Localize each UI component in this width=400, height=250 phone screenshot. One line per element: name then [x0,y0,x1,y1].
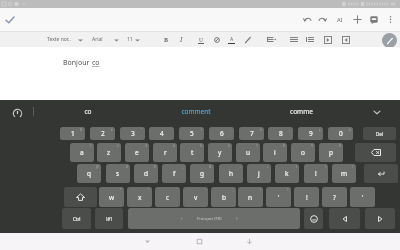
button[interactable]: Emoji [304,208,323,229]
button[interactable]: 1 [60,127,85,140]
button[interactable]: o [291,143,315,162]
staticText: b [222,193,226,202]
staticText: é [111,128,113,132]
staticText: ! [306,193,308,202]
button[interactable]: n [238,187,263,207]
button[interactable]: Redo [314,8,330,31]
staticText: Français (FR) [197,216,222,222]
staticText: o [301,148,305,157]
button[interactable]: 2 [90,127,115,140]
button[interactable]: j [247,164,271,183]
button[interactable]: a [70,143,94,162]
button[interactable]: 6 [209,127,234,140]
button[interactable]: Text color [223,31,239,48]
button[interactable]: Insert [349,8,365,31]
button[interactable]: t [180,143,204,162]
button[interactable]: c [155,187,180,207]
button[interactable]: l [304,164,328,183]
button[interactable]: comme [261,101,341,122]
button[interactable]: p [319,143,343,162]
button[interactable]: 7 [239,127,264,140]
button[interactable]: Highlight color [209,31,225,48]
button[interactable]: 5 [179,127,204,140]
staticText: 8 [279,129,283,138]
button[interactable]: ' [266,187,291,207]
button[interactable]: i [263,143,287,162]
button[interactable]: Line spacing [263,31,279,48]
staticText: - [240,165,241,169]
button[interactable]: Home [190,233,208,250]
button[interactable]: q [77,164,101,183]
button[interactable]: ! [294,187,319,207]
button[interactable]: Done [1,8,19,31]
button[interactable]: 9 [298,127,323,140]
button[interactable]: r [153,143,177,162]
staticText: : [205,188,206,192]
button[interactable]: 11 [124,31,141,48]
staticText: 7 [250,129,254,138]
button[interactable]: z [97,143,121,162]
button[interactable]: Enter [364,164,398,183]
button[interactable]: u [236,143,260,162]
staticText: 9 [311,144,313,148]
button[interactable]: Voice input [12,108,23,119]
staticText: & [80,128,83,132]
button[interactable]: Hide keyboard [138,233,156,250]
button[interactable]: y [208,143,232,162]
button[interactable]: Space [128,208,300,229]
button[interactable]: ? [322,187,347,207]
button[interactable]: More options [382,8,398,31]
button[interactable]: v [183,187,208,207]
staticText: ‹ [181,215,183,222]
button[interactable]: Del [363,127,396,140]
button[interactable]: 0 [328,127,353,140]
button[interactable]: 4 [149,127,174,140]
button[interactable]: Comment [366,8,382,31]
button[interactable]: Texte nor.. [44,31,84,48]
button[interactable]: Decrease indent [338,31,354,48]
button[interactable]: g [190,164,214,183]
button[interactable]: Bold [158,31,174,48]
button[interactable]: Move cursor left [329,208,360,229]
button[interactable]: x [127,187,152,207]
button[interactable]: 3 [120,127,145,140]
button[interactable]: d [134,164,158,183]
button[interactable]: Shift [64,187,97,207]
button[interactable]: m [332,164,356,183]
staticText: 7 [256,144,258,148]
button[interactable]: s [106,164,130,183]
button[interactable]: Edit mode [382,33,397,48]
button[interactable]: Align left [302,31,318,48]
button[interactable]: Undo [299,8,315,31]
button[interactable]: e [125,143,149,162]
button[interactable]: Spelling [332,8,348,31]
button[interactable]: k [275,164,299,183]
button[interactable]: More suggestions [371,106,383,118]
button[interactable]: Ctrl [62,208,91,229]
button[interactable]: 8 [268,127,293,140]
staticText: ç [319,128,321,132]
button[interactable]: Align center [286,31,302,48]
button[interactable]: Italic [173,31,189,48]
button[interactable]: Move cursor right [365,208,395,229]
staticText: A [230,36,234,43]
button[interactable]: co [48,101,128,122]
button[interactable]: Increase indent [320,31,336,48]
button[interactable]: Recent apps [240,233,258,250]
button[interactable]: h [219,164,243,183]
button[interactable]: Underline [193,31,209,48]
button[interactable]: w [99,187,124,207]
staticText: 0 [339,129,343,138]
button[interactable]: comment [156,101,236,122]
staticText: / [352,165,354,169]
button[interactable]: f [162,164,186,183]
staticText: Bonjour [63,58,92,68]
button[interactable]: Format [240,31,256,48]
button[interactable]: b [211,187,236,207]
button[interactable]: ' [350,187,375,207]
button[interactable]: !#1 [95,208,123,229]
button[interactable]: Arial [89,31,120,48]
staticText: " [141,128,143,132]
button[interactable]: Backspace [355,143,396,162]
staticText: è [260,128,262,132]
